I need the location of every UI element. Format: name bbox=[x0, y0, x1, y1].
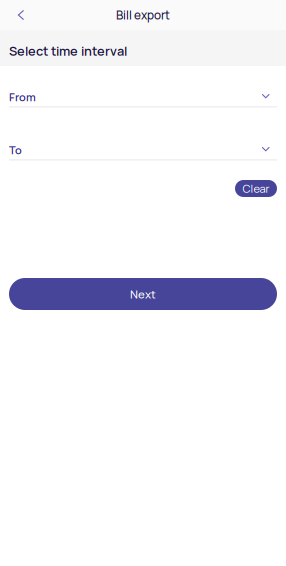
button[interactable]: Clear bbox=[235, 180, 277, 197]
staticText: Select time interval bbox=[9, 42, 127, 59]
button[interactable]: To bbox=[0, 136, 286, 162]
staticText: To bbox=[9, 142, 22, 157]
button[interactable]: Back bbox=[0, 0, 42, 30]
staticText: From bbox=[9, 89, 36, 104]
staticText: Next bbox=[130, 286, 156, 302]
button[interactable]: From bbox=[0, 83, 286, 109]
staticText: Bill export bbox=[116, 7, 170, 23]
staticText: Clear bbox=[242, 181, 269, 196]
button[interactable]: Next bbox=[9, 278, 277, 310]
